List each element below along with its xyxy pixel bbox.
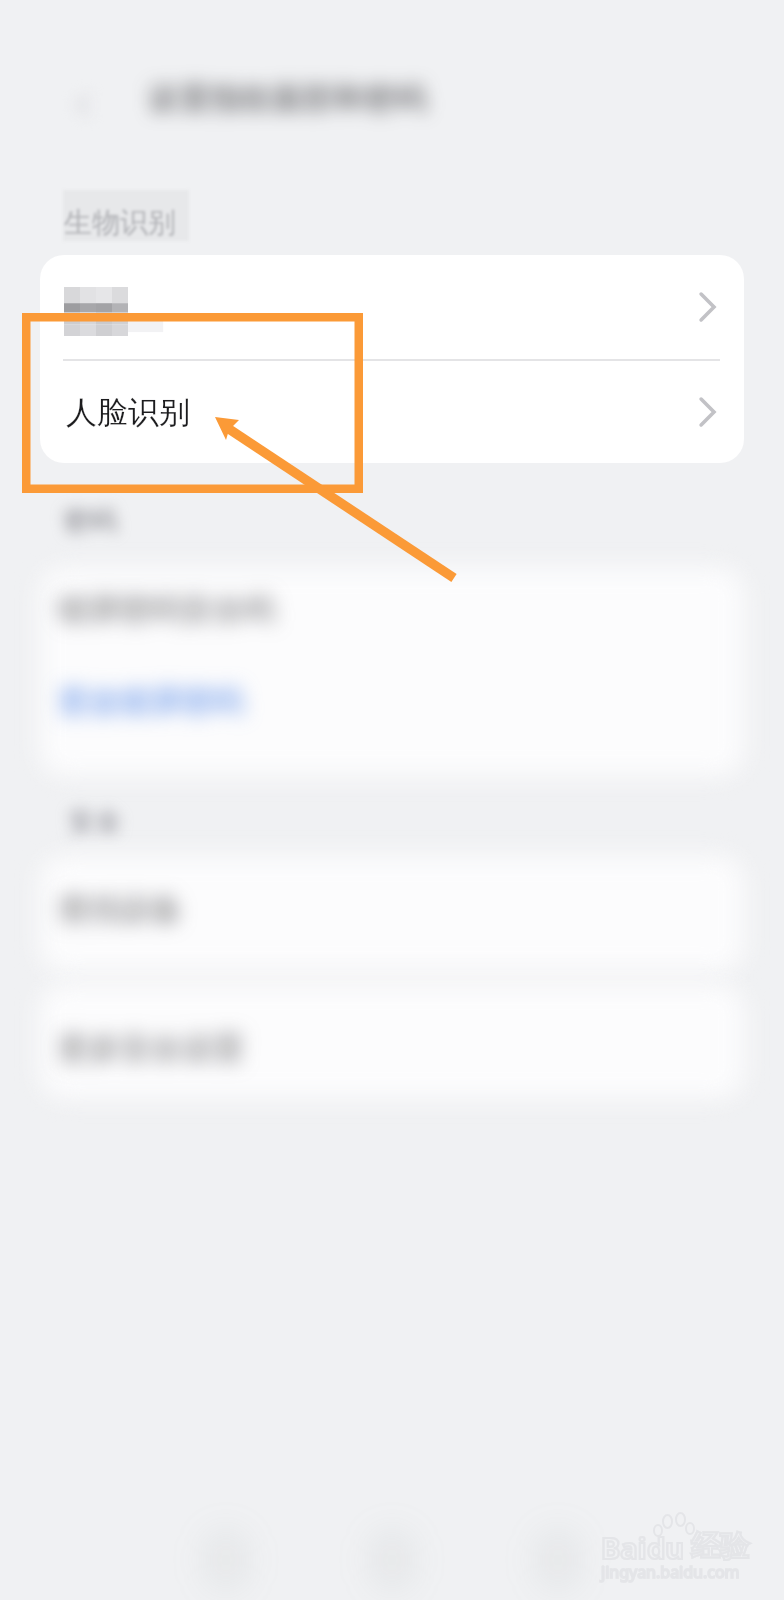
staticText: 更改锁屏密码 [58, 682, 244, 721]
staticText: 人脸识别 [66, 393, 190, 432]
staticText: 安全 [68, 805, 122, 839]
staticText: 更多安全设置 [58, 1029, 244, 1068]
staticText: 设置指纹面部和密码 [148, 79, 427, 118]
button[interactable]: Open [693, 397, 723, 427]
staticText: 查找设备 [58, 890, 182, 929]
staticText: 密码 [63, 504, 117, 538]
button[interactable]: Open [693, 292, 723, 322]
button[interactable]: Open [40, 255, 744, 359]
staticText: 生物识别 [64, 205, 176, 240]
staticText: 锁屏密码安全码 [58, 590, 275, 629]
button[interactable]: 人脸识别 [40, 361, 744, 463]
